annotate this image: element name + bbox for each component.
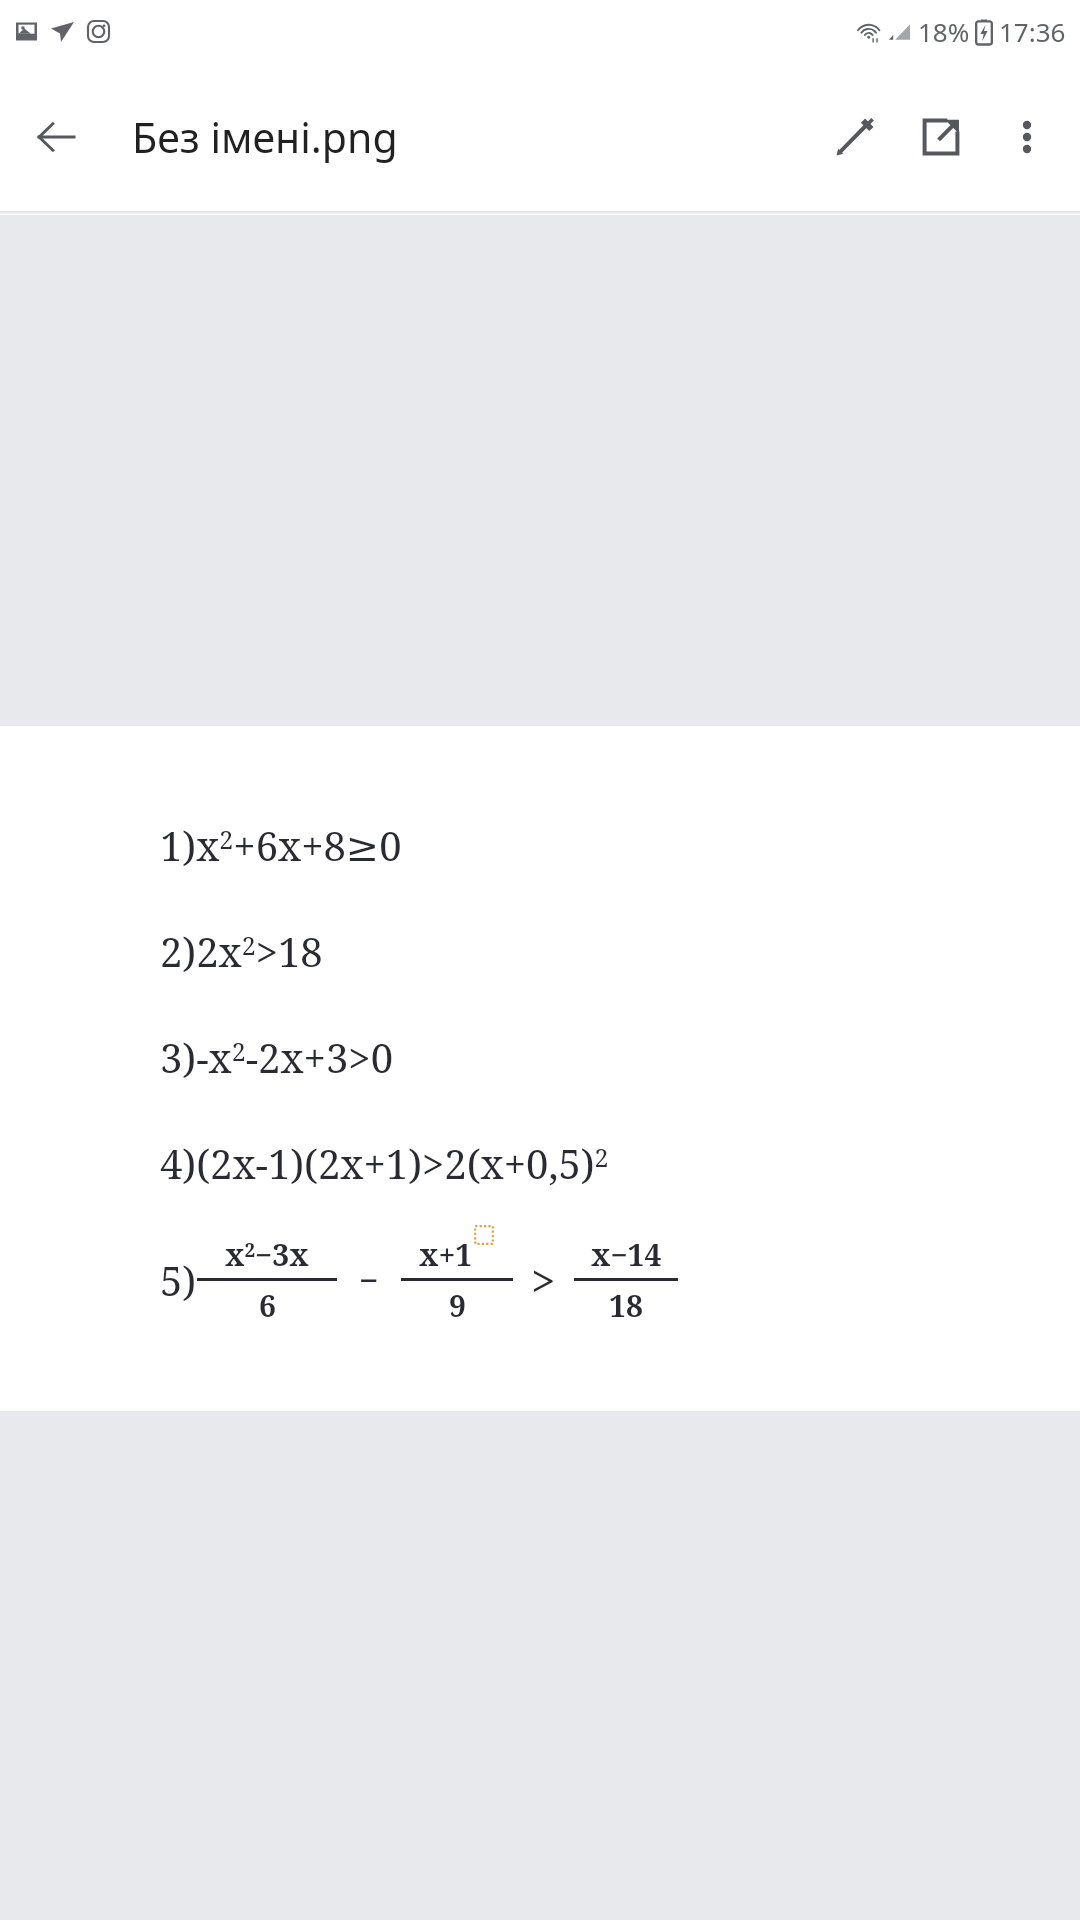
staticText: − xyxy=(359,1257,379,1303)
button[interactable]: Edit xyxy=(812,94,898,180)
staticText: > xyxy=(531,1250,556,1310)
button[interactable]: More options xyxy=(984,94,1070,180)
staticText: x+1 xyxy=(419,1234,473,1275)
staticText: 18 xyxy=(609,1285,643,1326)
button[interactable]: 1)x2+6x+8≥0 xyxy=(0,726,1080,1411)
button[interactable]: Back xyxy=(20,101,92,173)
staticText: x2−3x xyxy=(225,1234,309,1275)
staticText: 2)2x2>18 xyxy=(160,924,323,978)
staticText: 9 xyxy=(449,1285,466,1326)
staticText: 4)(2x-1)(2x+1)>2(x+0,5)2 xyxy=(160,1136,609,1190)
staticText: 5) xyxy=(160,1253,197,1307)
staticText: 1)x2+6x+8≥0 xyxy=(160,818,402,872)
button[interactable]: Open with xyxy=(898,94,984,180)
staticText: 18% xyxy=(918,14,970,49)
staticText: 3)-x2-2x+3>0 xyxy=(160,1030,394,1084)
staticText: x−14 xyxy=(591,1234,662,1275)
staticText: 17:36 xyxy=(999,14,1066,49)
staticText: Без імені.png xyxy=(132,109,398,165)
staticText: 6 xyxy=(259,1285,276,1326)
